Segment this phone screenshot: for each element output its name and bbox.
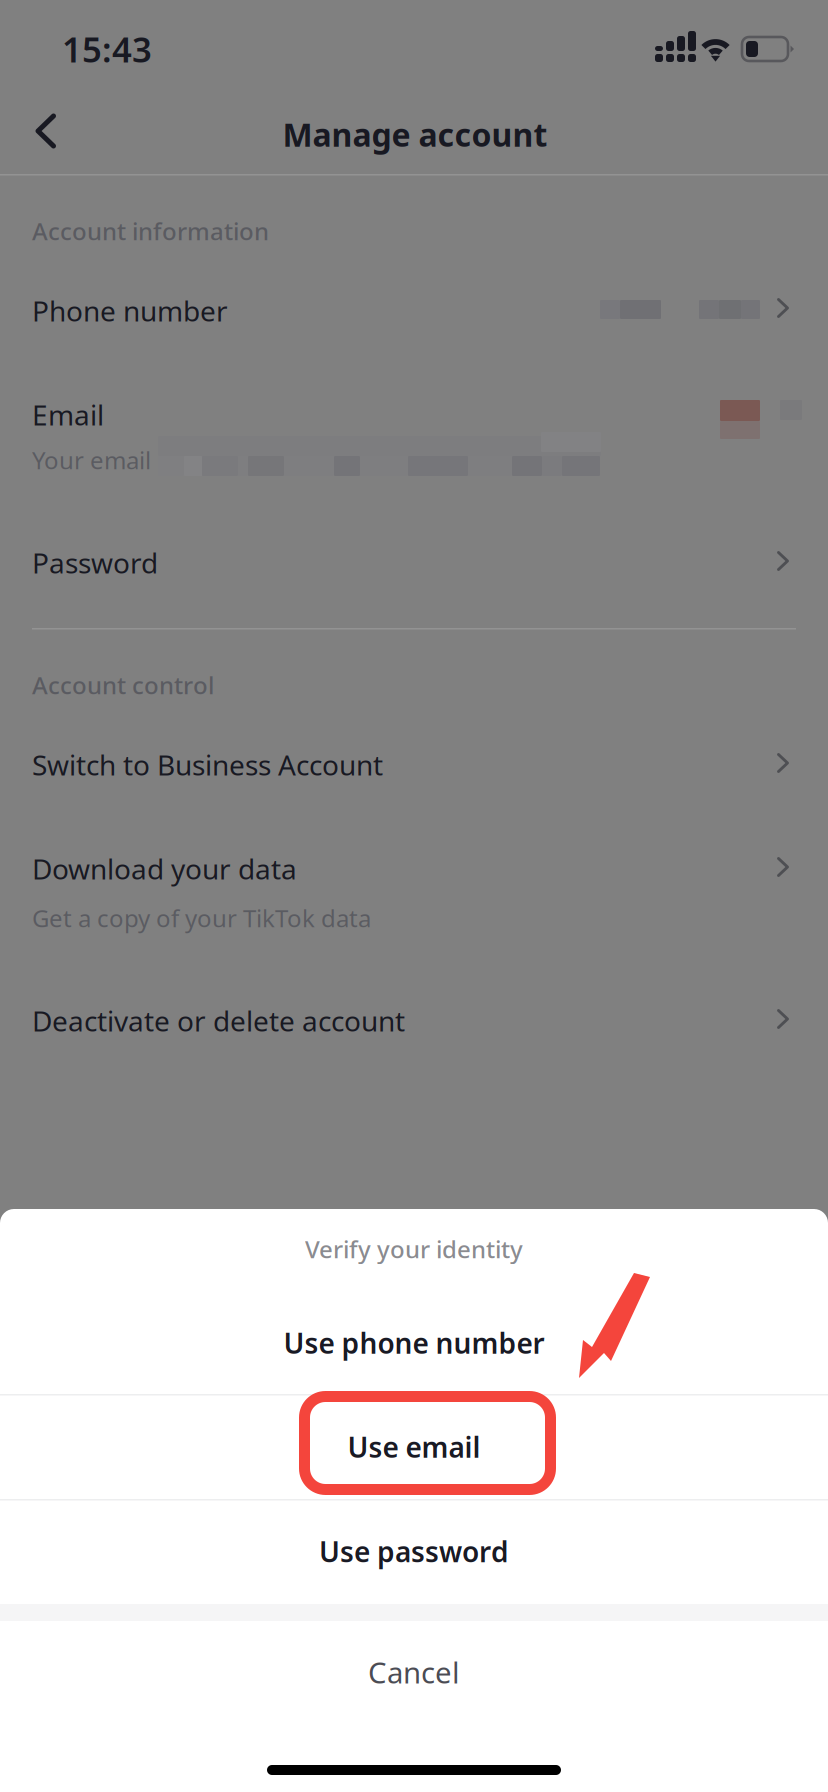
staticText: Download your data [32, 850, 297, 887]
staticText: Account information [32, 215, 269, 247]
staticText: Use email [347, 1428, 480, 1466]
button[interactable]: Switch to Business Account [0, 738, 828, 816]
staticText: Verify your identity [305, 1233, 523, 1265]
staticText: Phone number [32, 292, 228, 329]
staticText: Cancel [368, 1652, 460, 1691]
button[interactable]: Cancel [0, 1606, 828, 1738]
staticText: Switch to Business Account [32, 746, 383, 783]
staticText: Account control [32, 669, 214, 701]
staticText: Deactivate or delete account [32, 1002, 405, 1039]
staticText: Email [32, 396, 104, 433]
button[interactable]: Password [0, 536, 828, 612]
staticText: 15:43 [62, 26, 152, 72]
button[interactable]: Back [2, 89, 90, 173]
button[interactable]: Use phone number [0, 1303, 828, 1383]
button[interactable]: Deactivate or delete account [0, 994, 828, 1072]
button[interactable]: Use password [0, 1500, 828, 1603]
staticText: Password [32, 544, 158, 581]
staticText: Use password [319, 1533, 509, 1570]
staticText: Your email [32, 444, 151, 476]
button[interactable]: Download your data [0, 842, 828, 952]
button[interactable]: Phone number [0, 281, 828, 365]
staticText: Manage account [282, 113, 547, 155]
button[interactable]: Email [0, 388, 828, 508]
staticText: Use phone number [283, 1324, 544, 1362]
button[interactable]: Use email [0, 1395, 828, 1499]
staticText: Get a copy of your TikTok data [32, 902, 371, 934]
